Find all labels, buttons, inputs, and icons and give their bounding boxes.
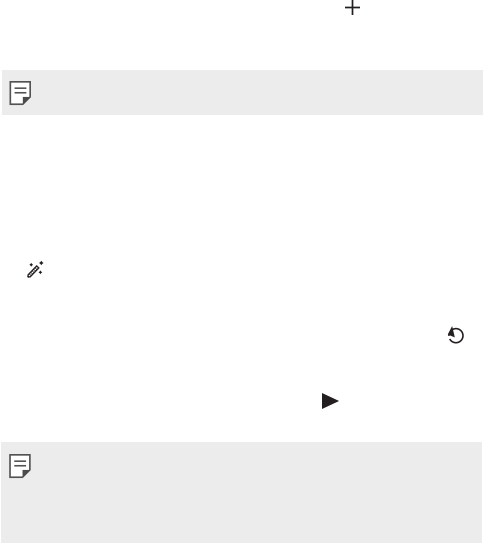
button[interactable]: New chat [345, 0, 360, 15]
button[interactable]: Message composer with attached note [1, 442, 482, 543]
button[interactable]: Regenerate [446, 325, 463, 344]
button[interactable]: Attached note [2, 70, 483, 115]
button[interactable]: Run [322, 393, 339, 409]
